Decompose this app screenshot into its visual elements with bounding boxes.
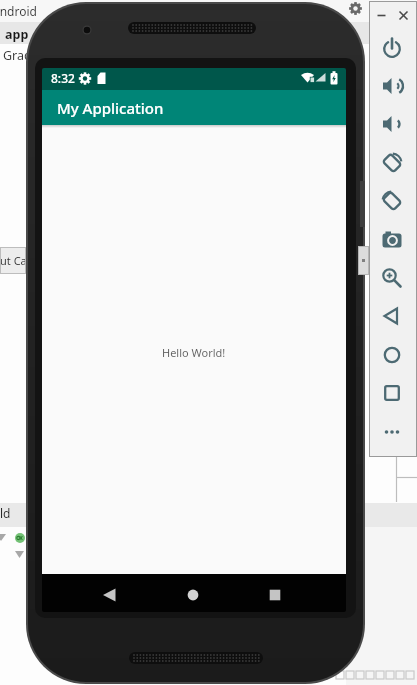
button[interactable] bbox=[373, 374, 411, 412]
staticText: app bbox=[5, 26, 29, 43]
staticText: Grad bbox=[3, 47, 32, 64]
button[interactable] bbox=[373, 259, 411, 297]
staticText: Hello World! bbox=[162, 345, 226, 360]
staticText: ut Ca bbox=[0, 253, 26, 268]
button[interactable] bbox=[373, 336, 411, 374]
button[interactable] bbox=[255, 574, 295, 612]
button[interactable] bbox=[373, 182, 411, 220]
staticText: My Application bbox=[57, 98, 164, 118]
staticText: ld bbox=[0, 505, 11, 521]
button[interactable] bbox=[373, 413, 411, 451]
button[interactable] bbox=[373, 105, 411, 143]
button[interactable] bbox=[373, 67, 411, 105]
staticText: Android bbox=[0, 3, 37, 19]
button[interactable] bbox=[89, 574, 129, 612]
button[interactable]: My Application bbox=[42, 90, 346, 125]
button[interactable] bbox=[373, 221, 411, 259]
button[interactable] bbox=[173, 574, 213, 612]
button[interactable] bbox=[373, 29, 411, 67]
button[interactable] bbox=[373, 144, 411, 182]
button[interactable] bbox=[373, 297, 411, 335]
staticText: 8:32 bbox=[51, 70, 75, 86]
